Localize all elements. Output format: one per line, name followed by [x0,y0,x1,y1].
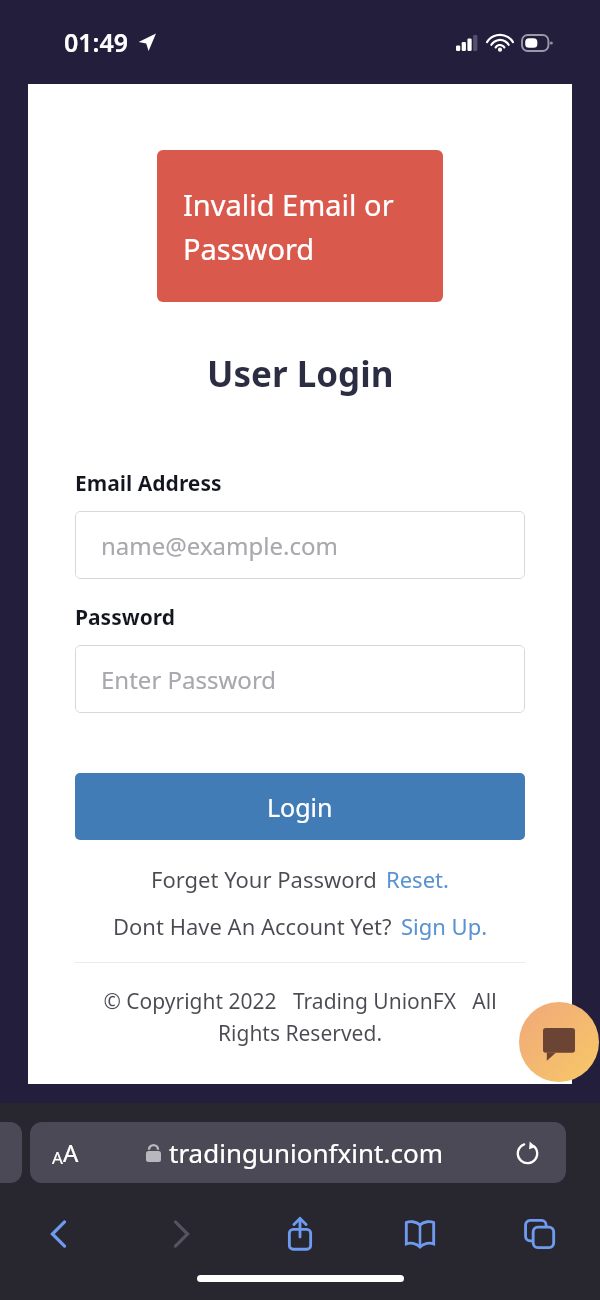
button[interactable]: Bookmarks [392,1206,448,1262]
staticText: User Login [207,350,394,398]
button[interactable]: name@example.com [75,511,525,579]
button[interactable]: Previous tab [0,1122,22,1183]
staticText: Forget Your Password [151,864,377,894]
button[interactable]: Login [75,773,525,840]
button[interactable]: Enter Password [75,645,525,713]
button[interactable]: Sign Up. [401,911,488,941]
button[interactable]: Open chat [519,1002,599,1082]
button[interactable]: Tabs [512,1206,568,1262]
button[interactable]: Share [272,1206,328,1262]
button[interactable]: Reload [510,1136,544,1170]
button[interactable]: A [30,1122,566,1183]
staticText: Invalid Email or Password [183,185,417,268]
button[interactable]: Back [32,1206,88,1262]
button[interactable]: Forward [152,1206,208,1262]
button[interactable]: Invalid Email or Password [157,150,443,302]
staticText: Login [267,790,333,824]
button[interactable]: Reset. [386,864,449,894]
staticText: name@example.com [101,529,338,562]
staticText: Password [75,603,176,632]
staticText: Reset. [386,864,449,894]
staticText: Enter Password [101,663,277,696]
staticText: A [63,1136,79,1169]
staticText: 01:49 [64,25,129,59]
staticText: © Copyright 2022 Trading UnionFX All Rig… [75,987,525,1047]
staticText: Sign Up. [401,911,488,941]
staticText: A [52,1146,63,1169]
staticText: Email Address [75,469,222,498]
staticText: tradingunionfxint.com [169,1135,443,1170]
staticText: Dont Have An Account Yet? [113,911,392,941]
